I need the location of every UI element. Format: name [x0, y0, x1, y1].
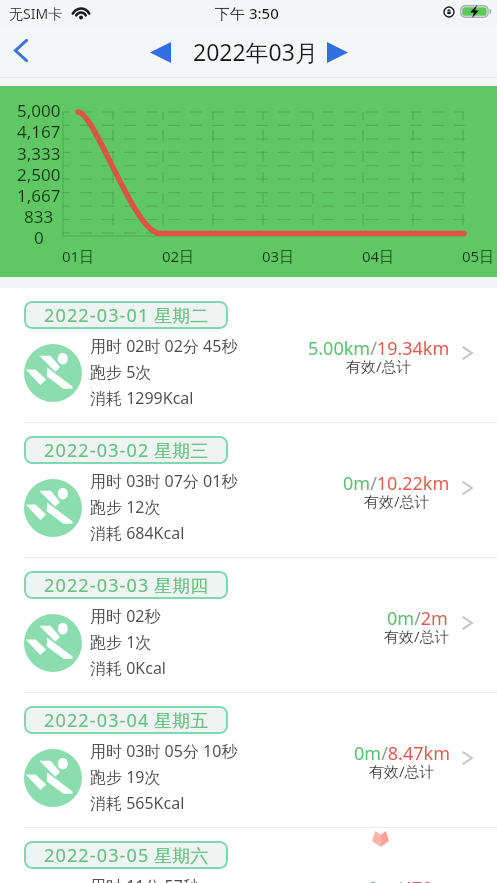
- button[interactable]: Back: [0, 28, 44, 72]
- staticText: 用时 11分 57秒: [90, 875, 199, 883]
- staticText: 用时 02秒: [90, 605, 161, 627]
- staticText: 有效/总计: [346, 356, 412, 376]
- staticText: 跑步 5次: [90, 361, 152, 383]
- staticText: 2022-03-03 星期四: [44, 573, 209, 598]
- button[interactable]: 2022-03-04 星期五: [0, 693, 497, 827]
- staticText: 用时 03时 05分 10秒: [90, 740, 238, 762]
- staticText: 跑步 12次: [90, 496, 161, 518]
- staticText: 跑步 1次: [90, 631, 152, 653]
- button[interactable]: Previous month: [141, 33, 179, 71]
- staticText: 2022-03-04 星期五: [44, 708, 209, 733]
- staticText: 用时 03时 07分 01秒: [90, 470, 238, 492]
- staticText: 833: [24, 205, 54, 228]
- staticText: 5.00km/19.34km: [308, 336, 450, 361]
- staticText: 跑步 19次: [90, 766, 161, 788]
- staticText: 消耗 565Kcal: [90, 792, 185, 814]
- button[interactable]: 2022-03-02 星期三: [0, 423, 497, 557]
- staticText: 有效/总计: [369, 761, 435, 781]
- staticText: 05日: [462, 246, 495, 266]
- staticText: 2022-03-01 星期二: [44, 303, 209, 328]
- staticText: 下午 3:50: [215, 3, 279, 23]
- staticText: 5,000: [17, 99, 61, 122]
- staticText: 0m/8.47km: [354, 741, 450, 766]
- staticText: 消耗 1299Kcal: [90, 387, 194, 409]
- staticText: 1,667: [17, 184, 61, 207]
- staticText: 0m/10.22km: [343, 471, 450, 496]
- staticText: 有效/总计: [384, 626, 450, 646]
- staticText: 3,333: [17, 142, 61, 165]
- staticText: 0: [34, 226, 44, 249]
- staticText: 01日: [62, 246, 95, 266]
- button[interactable]: 2022-03-01 星期二: [0, 288, 497, 422]
- staticText: 2022-03-05 星期六: [44, 843, 209, 868]
- staticText: 03日: [262, 246, 295, 266]
- staticText: 消耗 0Kcal: [90, 657, 167, 679]
- button[interactable]: 2022-03-05 星期六: [0, 828, 497, 883]
- button[interactable]: Next month: [318, 33, 356, 71]
- staticText: 2022年03月: [193, 36, 318, 67]
- staticText: 0m/472m: [368, 876, 450, 883]
- staticText: 无SIM卡: [9, 4, 63, 23]
- staticText: 04日: [362, 246, 395, 266]
- button[interactable]: 2022-03-03 星期四: [0, 558, 497, 692]
- staticText: 有效/总计: [364, 491, 430, 511]
- staticText: 消耗 684Kcal: [90, 522, 185, 544]
- staticText: 2022-03-02 星期三: [44, 438, 209, 463]
- staticText: 02日: [162, 246, 195, 266]
- staticText: 2,500: [17, 163, 61, 186]
- staticText: 0m/2m: [387, 606, 448, 631]
- staticText: 用时 02时 02分 45秒: [90, 335, 238, 357]
- staticText: 4,167: [17, 120, 61, 143]
